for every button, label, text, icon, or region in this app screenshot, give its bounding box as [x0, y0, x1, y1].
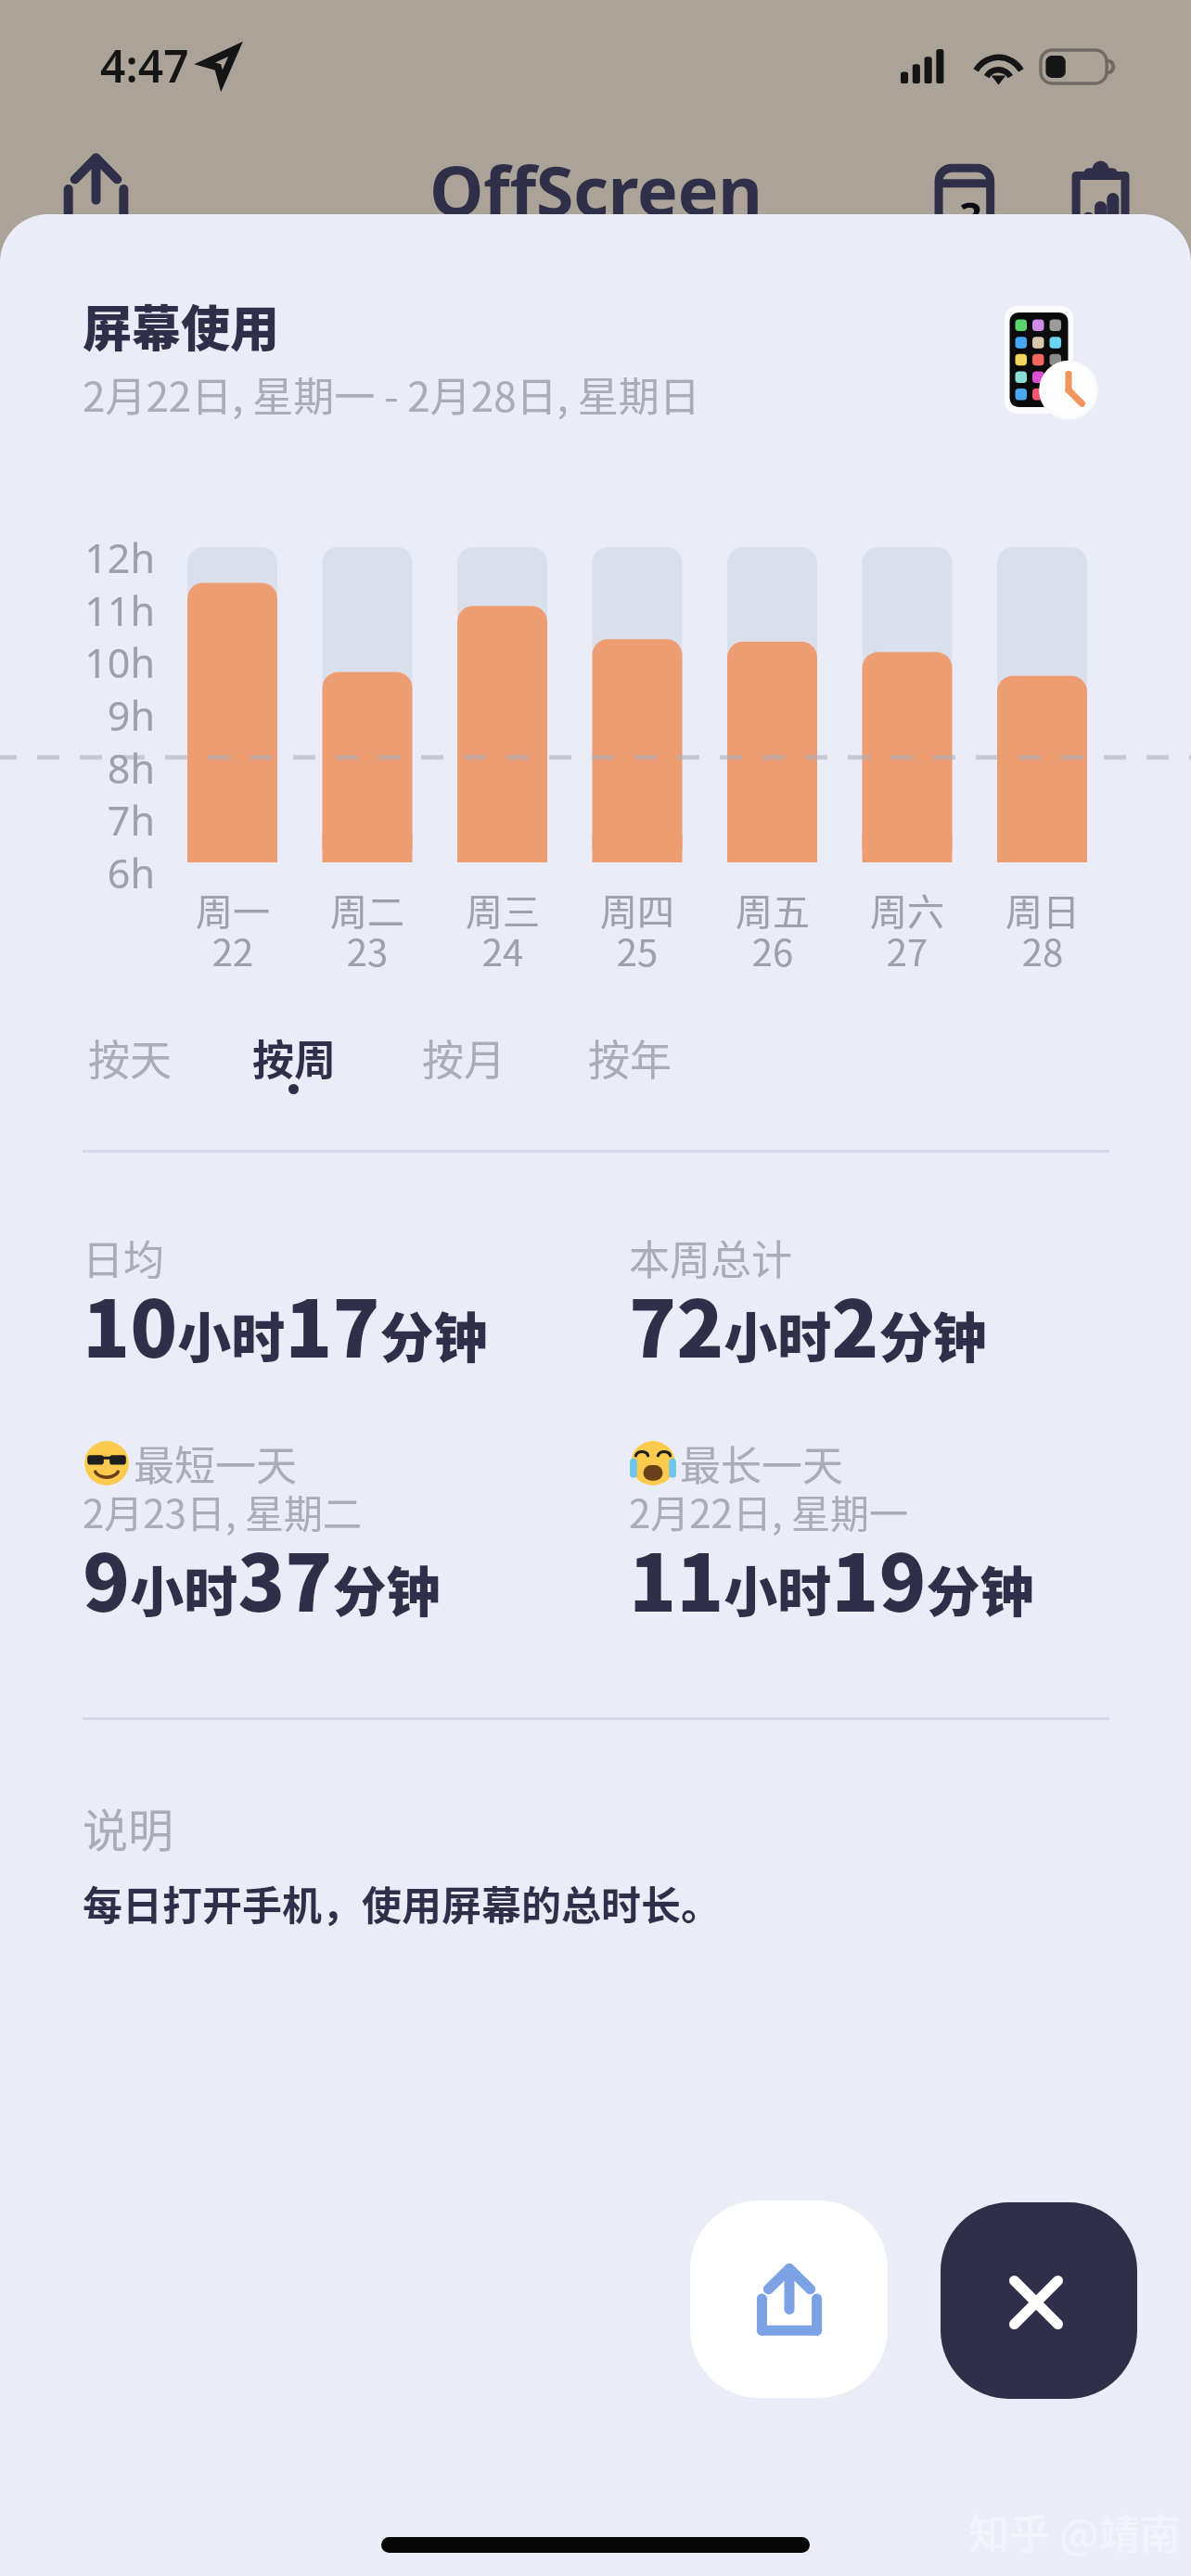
- staticText: 按年: [588, 1027, 672, 1088]
- staticText: 72小时2分钟: [629, 1268, 987, 1381]
- button[interactable]: 按天: [71, 1022, 181, 1111]
- staticText: 22: [159, 924, 307, 977]
- staticText: 24: [429, 924, 577, 977]
- staticText: 按周: [252, 1027, 337, 1088]
- staticText: 10h: [15, 635, 155, 690]
- staticText: 4:47: [100, 35, 189, 96]
- staticText: 周日: [968, 883, 1117, 937]
- staticText: 2月23日, 星期二: [83, 1483, 363, 1539]
- staticText: 本周总计: [629, 1228, 792, 1287]
- staticText: 7h: [15, 793, 155, 848]
- staticText: 屏幕使用: [83, 290, 279, 362]
- staticText: 日均: [83, 1228, 164, 1287]
- staticText: 每日打开手机，使用屏幕的总时长。: [83, 1874, 721, 1932]
- staticText: OffScreen: [429, 143, 762, 236]
- button[interactable]: 按年: [571, 1022, 681, 1111]
- staticText: 按月: [422, 1027, 506, 1088]
- staticText: 26: [698, 924, 847, 977]
- staticText: 9h: [15, 688, 155, 743]
- staticText: 周四: [563, 883, 711, 937]
- staticText: 按天: [88, 1027, 173, 1088]
- staticText: 11小时19分钟: [629, 1522, 1034, 1635]
- staticText: 周三: [429, 883, 577, 937]
- staticText: 最长一天: [680, 1434, 843, 1493]
- staticText: 11h: [15, 583, 155, 638]
- staticText: 25: [563, 924, 711, 977]
- staticText: 知乎 @靖南: [968, 2502, 1181, 2561]
- staticText: 9小时37分钟: [83, 1522, 441, 1635]
- button[interactable]: 按周: [236, 1022, 345, 1111]
- staticText: 2月22日, 星期一 - 2月28日, 星期日: [83, 364, 700, 424]
- button[interactable]: Reports: [1069, 151, 1143, 242]
- button[interactable]: 按月: [405, 1022, 515, 1111]
- staticText: 2月22日, 星期一: [629, 1483, 909, 1539]
- staticText: 最短一天: [134, 1434, 297, 1493]
- staticText: 周一: [159, 883, 307, 937]
- button[interactable]: Close: [941, 2202, 1137, 2399]
- staticText: 周五: [698, 883, 847, 937]
- staticText: 6h: [15, 846, 155, 900]
- button[interactable]: Calendar: [932, 151, 1009, 242]
- staticText: 27: [833, 924, 981, 977]
- staticText: 周六: [833, 883, 981, 937]
- staticText: 28: [968, 924, 1117, 977]
- staticText: 23: [293, 924, 442, 977]
- button[interactable]: Share: [42, 134, 150, 244]
- staticText: 3: [959, 189, 983, 245]
- button[interactable]: Share: [690, 2200, 888, 2398]
- staticText: 说明: [83, 1794, 174, 1860]
- staticText: 12h: [15, 530, 155, 585]
- staticText: 8h: [15, 741, 155, 796]
- staticText: 周二: [293, 883, 442, 937]
- staticText: 10小时17分钟: [83, 1268, 488, 1381]
